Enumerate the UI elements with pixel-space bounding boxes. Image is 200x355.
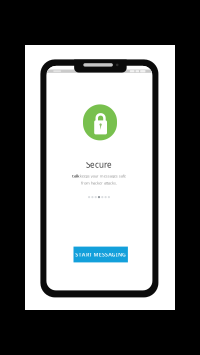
staticText: keeps your messages safe	[80, 173, 126, 179]
button[interactable]: START MESSAGING	[73, 247, 128, 262]
staticText: START MESSAGING	[75, 251, 126, 258]
staticText: talk	[72, 173, 79, 179]
staticText: Secure	[86, 159, 112, 170]
staticText: from hacker attacks.	[81, 180, 117, 185]
